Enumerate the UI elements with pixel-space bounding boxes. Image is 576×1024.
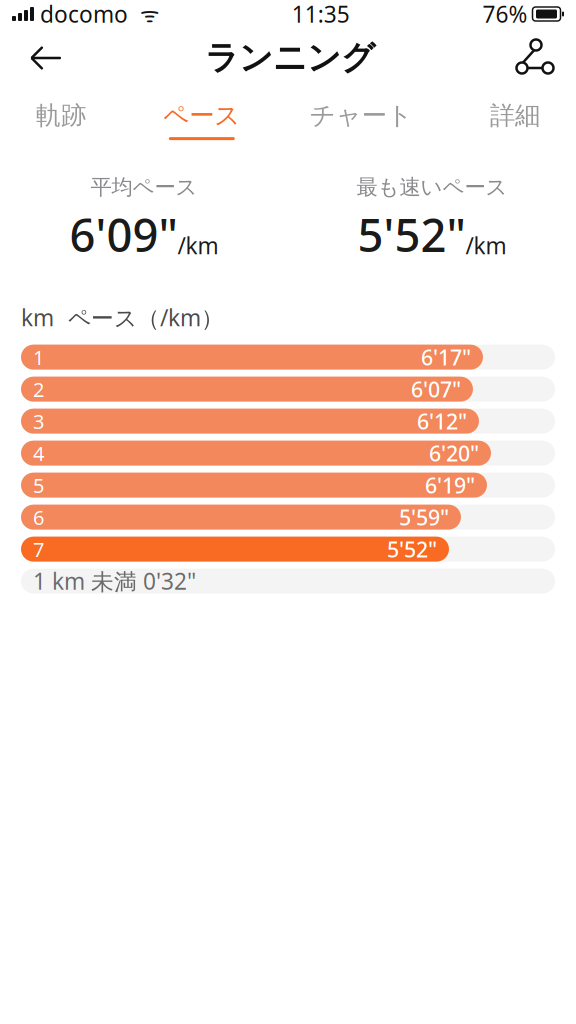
staticText: 3	[33, 408, 44, 434]
button[interactable]: 軌跡	[22, 96, 100, 144]
staticText: km	[21, 302, 54, 333]
staticText: ランニング	[205, 37, 375, 78]
staticText: 6'20"	[429, 439, 479, 467]
staticText: チャート	[310, 100, 413, 131]
staticText: 5'59"	[399, 503, 449, 531]
staticText: 6	[33, 504, 44, 530]
staticText: 6'07"	[411, 375, 461, 403]
staticText: 7	[33, 536, 44, 562]
button[interactable]: Share	[502, 34, 562, 82]
staticText: 1 km 未満 0'32"	[33, 566, 196, 596]
staticText: 詳細	[490, 100, 540, 131]
staticText: 最も速いペース	[356, 174, 507, 200]
staticText: 6'17"	[421, 343, 471, 371]
staticText: 軌跡	[36, 100, 86, 131]
staticText: docomo	[34, 0, 128, 29]
staticText: 6'12"	[417, 407, 467, 435]
staticText: 6'09"	[69, 204, 177, 264]
button[interactable]: ペース	[157, 96, 246, 144]
staticText: 1	[33, 344, 44, 370]
staticText: 76%	[482, 0, 527, 29]
staticText: 6'19"	[425, 471, 475, 499]
staticText: /km	[465, 230, 506, 260]
button[interactable]: チャート	[304, 96, 419, 144]
button[interactable]: 詳細	[476, 96, 554, 144]
button[interactable]: Back	[14, 35, 78, 81]
staticText: 5'52"	[387, 535, 437, 563]
staticText: ᯤ	[128, 0, 159, 28]
staticText: 2	[33, 376, 44, 402]
staticText: 平均ペース	[90, 174, 197, 200]
staticText: 4	[33, 440, 44, 466]
staticText: 11:35	[292, 0, 350, 29]
staticText: ペース	[163, 100, 240, 131]
staticText: 5'52"	[357, 204, 465, 264]
staticText: ペース（/km）	[54, 302, 224, 333]
staticText: /km	[177, 230, 218, 260]
staticText: 5	[33, 472, 44, 498]
